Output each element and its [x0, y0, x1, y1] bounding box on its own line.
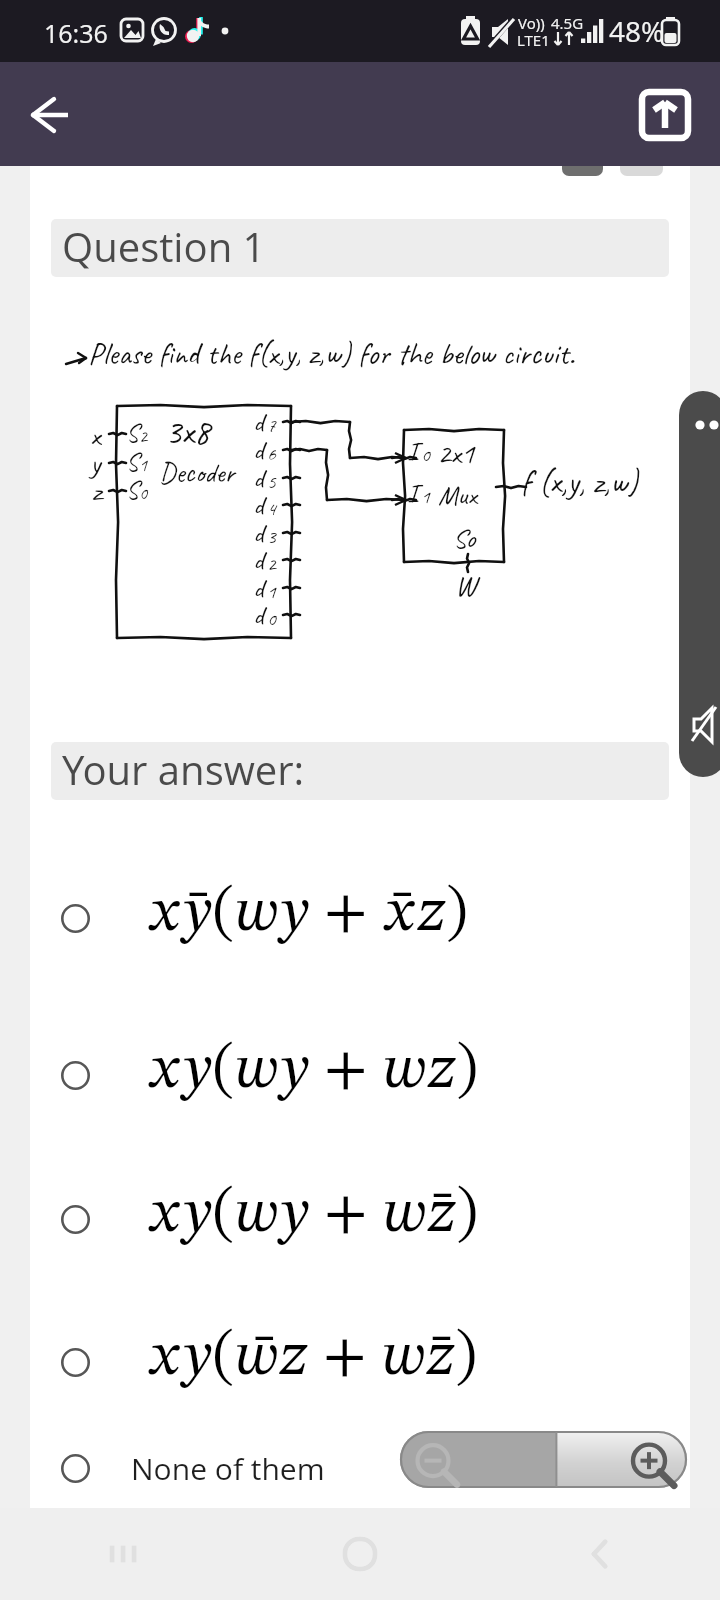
button[interactable]: 𝑥𝑦(𝑤𝑦 + 𝑤𝑧̄) [34, 1167, 660, 1271]
button[interactable]: None of them [34, 1427, 660, 1509]
button[interactable]: 𝑥𝑦(𝑤𝑦 + 𝑤𝑧) [34, 1023, 660, 1127]
staticText: z [92, 472, 102, 510]
staticText: f (x,y, z,w) [521, 461, 638, 503]
staticText: Decoder [159, 455, 235, 490]
button[interactable]: Open in browser [640, 90, 690, 140]
staticText: Your answer: [62, 742, 305, 796]
staticText: 4.5G [551, 13, 584, 33]
staticText: d [253, 571, 264, 605]
button[interactable]: Volume panel [679, 391, 720, 777]
staticText: S [126, 446, 139, 478]
staticText: 𝑥𝑦̄(𝑤𝑦 + 𝑥̄𝑧) [147, 884, 468, 945]
button[interactable]: 𝑥𝑦(𝑤̄𝑧 + 𝑤𝑧̄) [34, 1310, 660, 1414]
staticText: d [253, 488, 264, 522]
staticText: Vo)) [518, 13, 545, 33]
button[interactable]: Zoom [400, 1431, 687, 1488]
staticText: d [253, 516, 264, 550]
staticText: 0 [267, 606, 276, 630]
staticText: 16:36 [44, 16, 108, 50]
staticText: W [455, 567, 476, 604]
staticText: Please find the f(x,y, z,w) for the belo… [88, 334, 575, 373]
staticText: So [453, 521, 476, 555]
staticText: 𝑥𝑦(𝑤̄𝑧 + 𝑤𝑧̄) [147, 1328, 478, 1389]
staticText: 𝑥𝑦(𝑤𝑦 + 𝑤𝑧) [147, 1041, 479, 1102]
staticText: 3x8 [165, 409, 210, 454]
button[interactable]: Next page [620, 146, 663, 176]
staticText: 7 [267, 413, 276, 437]
button[interactable]: Previous page [562, 146, 603, 176]
staticText: I [407, 476, 418, 510]
staticText: I [407, 434, 418, 468]
staticText: 1 [421, 484, 430, 508]
staticText: d [253, 405, 264, 439]
staticText: d [253, 598, 264, 632]
button[interactable]: 𝑥𝑦̄(𝑤𝑦 + 𝑥̄𝑧) [34, 866, 660, 970]
staticText: None of them [131, 1448, 325, 1489]
staticText: 1 [267, 579, 276, 603]
button[interactable]: Navigate up [22, 86, 80, 144]
staticText: 1 [139, 454, 148, 477]
staticText: 2x1 [437, 434, 475, 472]
staticText: d [253, 461, 264, 495]
staticText: Mux [438, 478, 477, 512]
staticText: 2 [267, 551, 276, 575]
staticText: d [253, 433, 264, 467]
staticText: 5 [267, 469, 276, 493]
staticText: y [90, 444, 101, 482]
staticText: S [126, 417, 139, 449]
staticText: 3 [267, 524, 276, 548]
staticText: 4 [267, 496, 276, 520]
staticText: d [253, 543, 264, 577]
staticText: 𝑥𝑦(𝑤𝑦 + 𝑤𝑧̄) [147, 1185, 479, 1246]
staticText: x [90, 416, 101, 454]
staticText: 2 [139, 425, 148, 448]
staticText: Question 1 [62, 219, 266, 273]
staticText: 48% [609, 12, 665, 50]
staticText: LTE1 [517, 30, 550, 50]
staticText: S [126, 474, 139, 506]
staticText: 0 [421, 442, 430, 466]
staticText: 0 [139, 482, 148, 505]
staticText: 6 [267, 441, 276, 465]
